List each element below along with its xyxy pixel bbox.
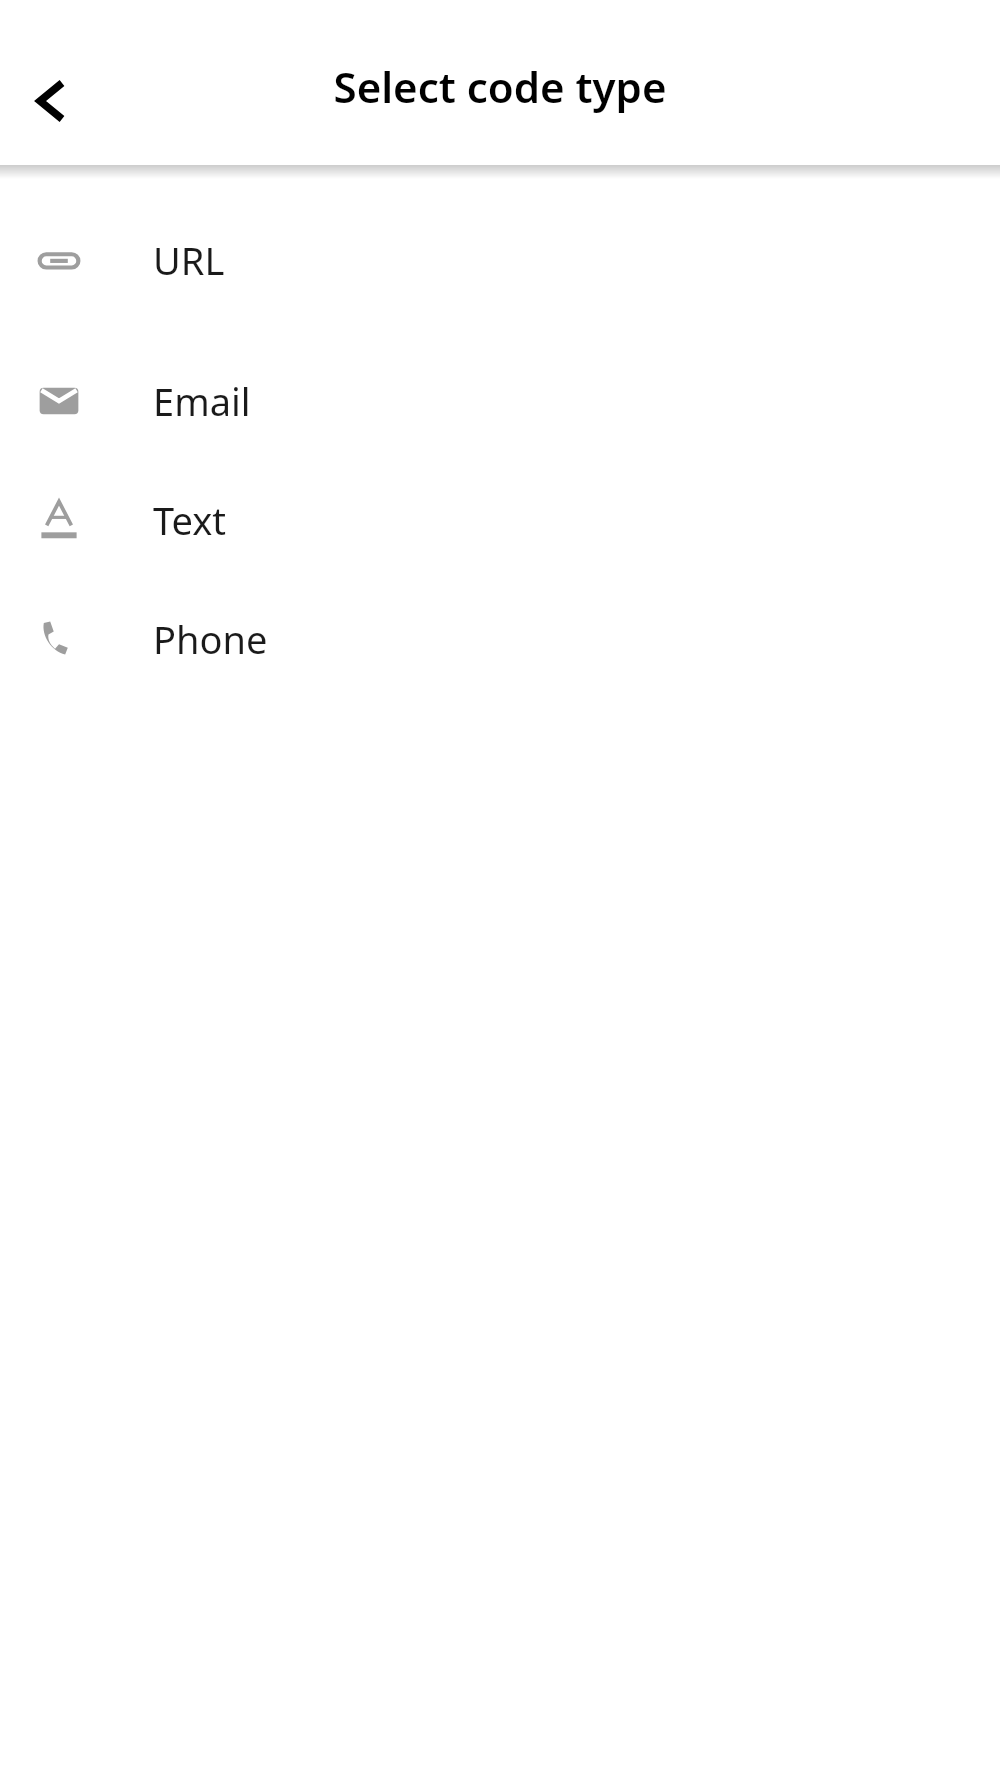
staticText: Phone (153, 613, 268, 665)
button[interactable]: Phone (0, 579, 1000, 698)
staticText: Text (153, 494, 226, 546)
button[interactable]: URL (0, 179, 1000, 341)
button[interactable]: Back (10, 57, 98, 145)
button[interactable]: Text (0, 460, 1000, 579)
button[interactable]: Email (0, 341, 1000, 460)
staticText: URL (153, 234, 225, 286)
staticText: Select code type (0, 58, 1000, 115)
staticText: Email (153, 375, 251, 427)
